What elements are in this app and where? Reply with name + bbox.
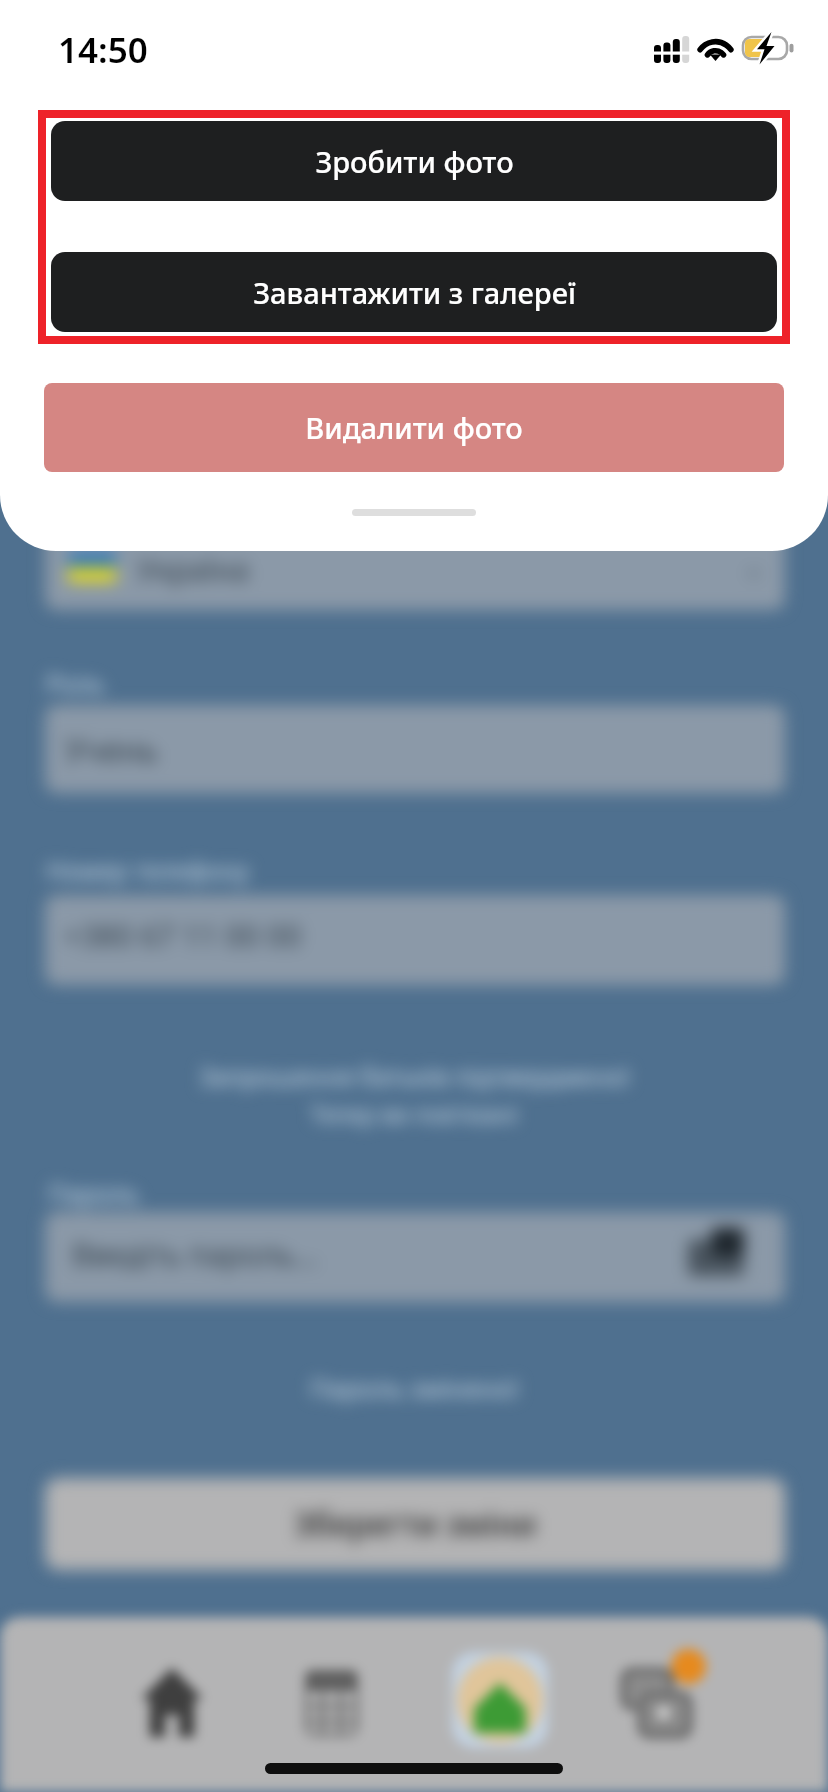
button[interactable]: Номер телефону [45, 895, 785, 985]
staticText: Введіть пароль... [72, 1234, 318, 1275]
button[interactable]: Calendar [305, 1670, 358, 1736]
button[interactable]: Пароль [45, 1212, 785, 1302]
button[interactable]: Profile [452, 1652, 548, 1748]
button[interactable]: Завантажити з галереї [51, 252, 777, 332]
button[interactable]: Показати пароль [688, 1228, 744, 1280]
staticText: Пароль [48, 1176, 139, 1210]
button[interactable]: Зберегти зміни [45, 1478, 785, 1570]
button[interactable]: Home [141, 1668, 203, 1737]
button[interactable]: Роль [45, 705, 785, 793]
staticText: Тепер ви пов'язані [310, 1098, 518, 1129]
button[interactable]: Chats [621, 1668, 692, 1738]
staticText: Зберегти зміни [294, 1502, 537, 1546]
staticText: Учень [65, 728, 158, 772]
staticText: Номер телефону [46, 853, 250, 887]
staticText: 14:50 [58, 26, 148, 74]
staticText: Завантажити з галереї [253, 273, 576, 312]
staticText: Зробити фото [315, 142, 514, 181]
button[interactable]: Видалити фото [44, 383, 784, 472]
staticText: Запрошення батьків підтверджено! [199, 1059, 630, 1093]
staticText: Видалити фото [305, 408, 523, 447]
button[interactable]: Зробити фото [51, 121, 777, 201]
staticText: Україна [137, 549, 249, 590]
button[interactable]: Країна [45, 500, 785, 610]
staticText: +380 67 11 00 00 [64, 915, 302, 956]
staticText: Роль [46, 666, 105, 700]
staticText: Пароль змінено! [309, 1370, 519, 1405]
